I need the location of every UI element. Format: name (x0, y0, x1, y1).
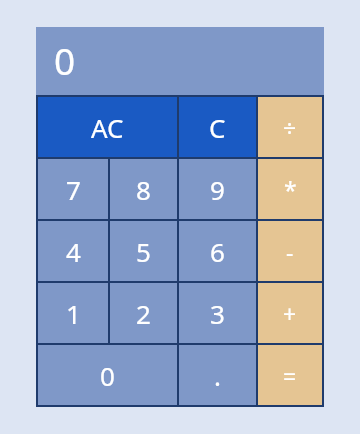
button[interactable]: C (179, 97, 256, 157)
button[interactable]: 0 (38, 345, 177, 405)
staticText: 5 (136, 234, 151, 269)
button[interactable]: = (258, 345, 322, 405)
staticText: . (214, 358, 221, 393)
button[interactable]: * (258, 159, 322, 219)
staticText: 2 (136, 296, 151, 331)
button[interactable]: 6 (179, 221, 256, 281)
staticText: * (284, 174, 297, 205)
staticText: + (283, 298, 297, 329)
staticText: - (286, 236, 294, 267)
staticText: 1 (66, 296, 81, 331)
staticText: 7 (66, 172, 81, 207)
staticText: 6 (210, 234, 225, 269)
staticText: 8 (136, 172, 151, 207)
button[interactable]: . (179, 345, 256, 405)
button[interactable]: 2 (110, 283, 177, 343)
button[interactable]: 7 (38, 159, 108, 219)
button[interactable]: AC (38, 97, 177, 157)
button[interactable]: 4 (38, 221, 108, 281)
button[interactable]: + (258, 283, 322, 343)
staticText: 0 (54, 35, 76, 85)
button[interactable]: 1 (38, 283, 108, 343)
button[interactable]: 5 (110, 221, 177, 281)
staticText: 9 (210, 172, 225, 207)
staticText: 3 (210, 296, 225, 331)
button[interactable]: ÷ (258, 97, 322, 157)
staticText: 0 (100, 358, 115, 393)
button[interactable]: - (258, 221, 322, 281)
staticText: C (209, 110, 226, 145)
staticText: = (283, 360, 297, 391)
button[interactable]: 8 (110, 159, 177, 219)
button[interactable]: 3 (179, 283, 256, 343)
staticText: 4 (66, 234, 81, 269)
staticText: AC (91, 110, 124, 145)
button[interactable]: 9 (179, 159, 256, 219)
staticText: ÷ (283, 112, 297, 143)
